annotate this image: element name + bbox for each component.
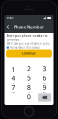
button[interactable]: 9 xyxy=(37,83,52,93)
staticText: 9:41 xyxy=(7,16,14,20)
staticText: 3 xyxy=(43,64,47,73)
button[interactable]: 8 xyxy=(21,83,36,93)
staticText: Enter your phone number to continue xyxy=(7,34,48,41)
staticText: JKL xyxy=(28,82,30,84)
button[interactable]: Delete xyxy=(37,93,52,102)
staticText: 8 xyxy=(27,83,31,92)
staticText: WXYZ xyxy=(43,92,47,93)
staticText: MNO xyxy=(43,82,46,84)
staticText: 5 xyxy=(27,74,31,82)
button[interactable]: 2 xyxy=(21,65,36,74)
button[interactable]: Back xyxy=(4,21,11,33)
staticText: Phone Number xyxy=(14,24,44,30)
button[interactable]: 1 xyxy=(6,65,21,74)
staticText: ABC xyxy=(27,73,30,75)
button[interactable]: 0 xyxy=(21,93,36,102)
staticText: Continue xyxy=(22,52,36,55)
staticText: 2 xyxy=(27,64,31,73)
staticText: DEF xyxy=(43,73,46,75)
button[interactable]: 6 xyxy=(37,74,52,83)
staticText: TUV xyxy=(27,92,30,93)
staticText: GHI xyxy=(12,82,14,84)
button[interactable]: 7 xyxy=(6,83,21,93)
staticText: PQRS xyxy=(11,92,15,93)
button[interactable]: Remember this device xyxy=(4,46,53,49)
button[interactable]: 4 xyxy=(6,74,21,83)
staticText: 0 xyxy=(27,92,31,101)
staticText: 9 xyxy=(43,83,47,92)
staticText: We'll text you a verification code. xyxy=(7,42,51,45)
button[interactable]: 3 xyxy=(37,65,52,74)
staticText: 1 xyxy=(11,65,15,74)
staticText: 6 xyxy=(43,74,47,82)
staticText: Remember this device xyxy=(10,46,40,49)
staticText: 4 xyxy=(11,74,15,82)
staticText: 7 xyxy=(11,83,15,92)
button[interactable]: Continue xyxy=(6,49,52,57)
button[interactable]: 5 xyxy=(21,74,36,83)
